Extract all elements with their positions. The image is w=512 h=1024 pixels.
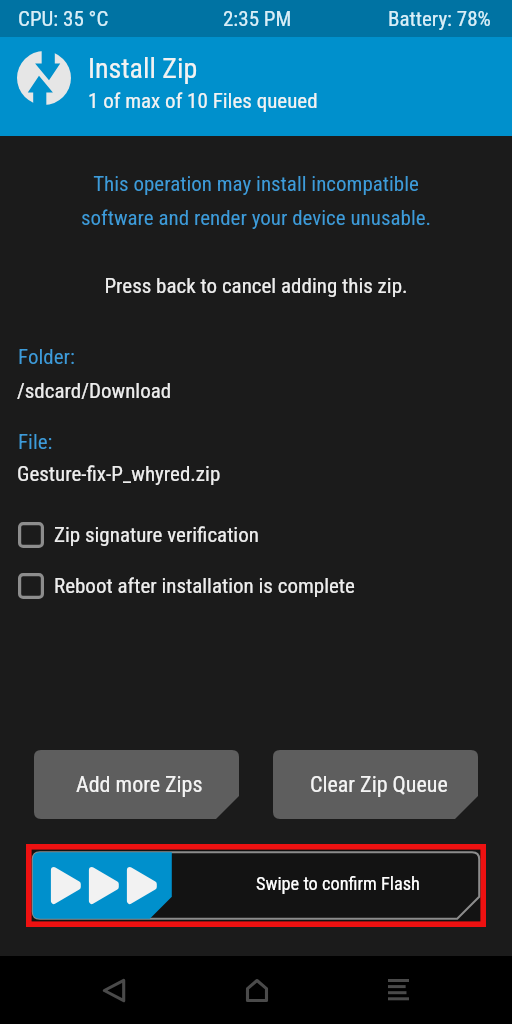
staticText: This operation may install incompatible bbox=[0, 172, 512, 197]
staticText: Gesture-fix-P_whyred.zip bbox=[17, 462, 221, 487]
staticText: Add more Zips bbox=[76, 772, 203, 798]
staticText: /sdcard/Download bbox=[17, 379, 172, 404]
staticText: Folder: bbox=[18, 345, 75, 370]
button[interactable]: Back bbox=[74, 956, 154, 1024]
button[interactable]: Add more Zips bbox=[34, 750, 239, 819]
staticText: Press back to cancel adding this zip. bbox=[0, 274, 512, 299]
staticText: Swipe to confirm Flash bbox=[256, 873, 420, 894]
staticText: Battery: 78% bbox=[388, 7, 491, 32]
staticText: CPU: 35 °C bbox=[18, 7, 109, 32]
staticText: Zip signature verification bbox=[54, 523, 259, 548]
staticText: File: bbox=[18, 430, 53, 455]
staticText: 2:35 PM bbox=[223, 7, 292, 32]
button[interactable]: Clear Zip Queue bbox=[273, 750, 478, 819]
staticText: software and render your device unusable… bbox=[0, 206, 512, 231]
button[interactable]: Zip signature verification bbox=[0, 515, 512, 555]
staticText: Install Zip bbox=[88, 52, 198, 85]
staticText: 1 of max of 10 Files queued bbox=[88, 89, 318, 114]
staticText: Reboot after installation is complete bbox=[54, 574, 355, 599]
button[interactable]: Menu bbox=[358, 956, 438, 1024]
staticText: Clear Zip Queue bbox=[310, 772, 448, 798]
button[interactable]: Swipe to confirm Flash bbox=[26, 844, 486, 927]
button[interactable]: Reboot after installation is complete bbox=[0, 566, 512, 606]
button[interactable]: Home bbox=[217, 956, 297, 1024]
